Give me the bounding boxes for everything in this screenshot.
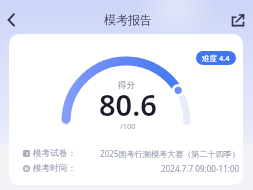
staticText: 2024.7.7 09:00-11:00: [161, 163, 240, 174]
staticText: /100: [120, 121, 136, 131]
button[interactable]: 难度 4.4: [196, 51, 236, 65]
button[interactable]: Share: [226, 8, 250, 32]
staticText: 模考报告: [104, 12, 152, 27]
staticText: 得分: [118, 80, 135, 91]
staticText: 2025国考行测模考大赛（第二十四季）: [100, 148, 240, 159]
staticText: 模考时间：: [33, 163, 76, 174]
staticText: 难度 4.4: [202, 53, 230, 63]
button[interactable]: Back: [3, 6, 25, 28]
staticText: 80.6: [99, 85, 157, 124]
staticText: 模考试卷：: [33, 148, 76, 159]
